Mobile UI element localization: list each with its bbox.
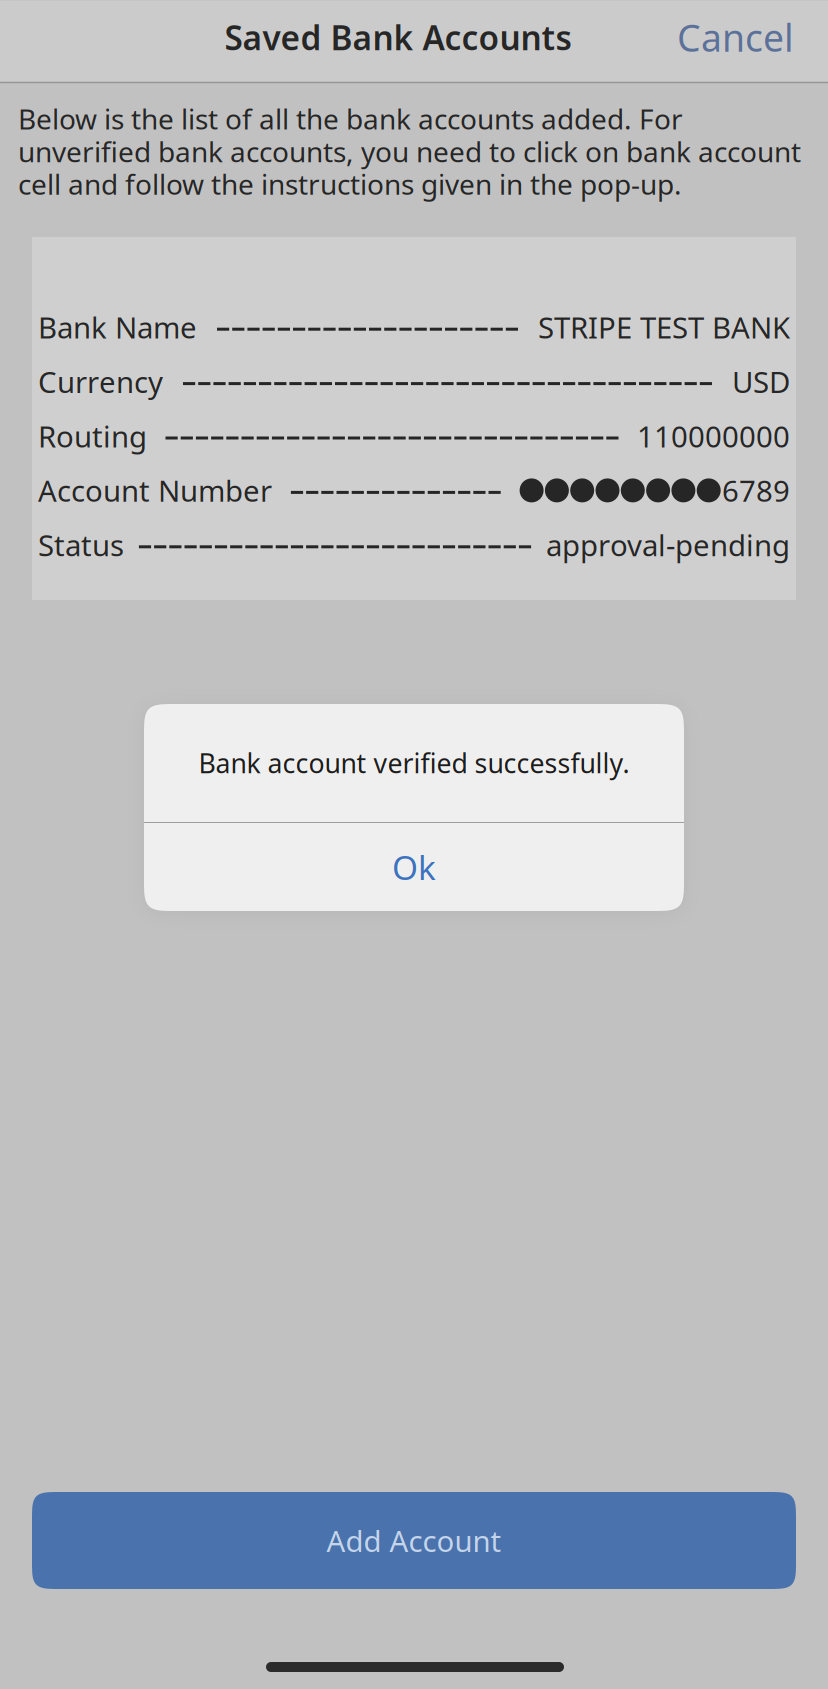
staticText: Currency: [38, 362, 163, 401]
staticText: STRIPE TEST BANK: [538, 308, 790, 347]
button[interactable]: Add Account: [32, 1492, 796, 1589]
button[interactable]: Bank Name: [32, 237, 796, 600]
staticText: Below is the list of all the bank accoun…: [18, 100, 801, 202]
staticText: Status: [38, 525, 124, 564]
staticText: Routing: [38, 416, 147, 455]
staticText: Account Number: [38, 471, 272, 510]
staticText: Bank account verified successfully.: [198, 745, 629, 781]
staticText: approval-pending: [546, 525, 790, 564]
button[interactable]: Cancel: [644, 1, 794, 74]
staticText: 6789: [722, 471, 790, 510]
staticText: Saved Bank Accounts: [224, 15, 571, 59]
staticText: Bank Name: [38, 308, 197, 347]
button[interactable]: Ok: [144, 823, 684, 911]
staticText: Cancel: [677, 12, 794, 62]
staticText: Add Account: [326, 1521, 501, 1560]
staticText: 110000000: [637, 416, 790, 455]
staticText: Ok: [392, 845, 436, 889]
staticText: USD: [732, 362, 790, 401]
